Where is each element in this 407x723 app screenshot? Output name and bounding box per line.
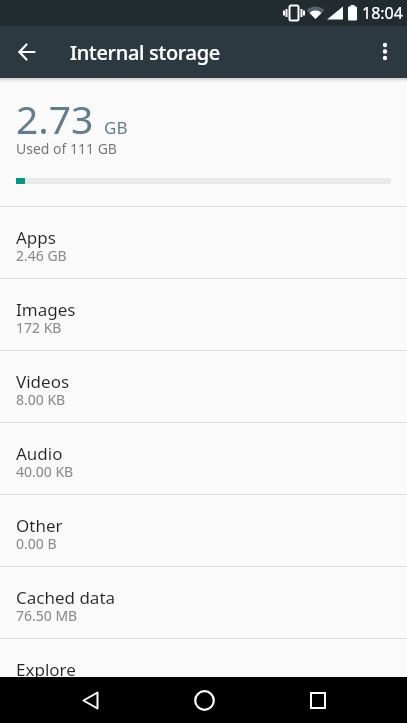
staticText: Used of 111 GB	[16, 139, 117, 158]
staticText: 18:04	[362, 2, 403, 24]
staticText: 2.73	[16, 92, 104, 145]
staticText: 8.00 KB	[16, 390, 66, 409]
button[interactable]	[363, 26, 407, 78]
staticText: Audio	[16, 442, 63, 465]
staticText: Videos	[16, 370, 70, 393]
staticText: Other	[16, 514, 63, 537]
button[interactable]	[169, 677, 239, 723]
button[interactable]: Apps	[0, 206, 407, 278]
button[interactable]	[283, 677, 353, 723]
button[interactable]: Audio	[0, 422, 407, 494]
button[interactable]	[55, 677, 125, 723]
staticText: Explore	[16, 658, 76, 677]
button[interactable]: Other	[0, 494, 407, 566]
staticText: Internal storage	[70, 39, 220, 66]
staticText: 2.46 GB	[16, 246, 67, 265]
button[interactable]: Explore	[0, 638, 407, 677]
staticText: GB	[104, 116, 128, 139]
button[interactable]	[0, 26, 54, 78]
staticText: 76.50 MB	[16, 606, 78, 625]
button[interactable]: Cached data	[0, 566, 407, 638]
staticText: Cached data	[16, 586, 116, 609]
button[interactable]: Images	[0, 278, 407, 350]
staticText: 0.00 B	[16, 534, 57, 553]
button[interactable]: Videos	[0, 350, 407, 422]
staticText: Images	[16, 298, 76, 321]
staticText: Apps	[16, 226, 56, 249]
staticText: 172 KB	[16, 318, 62, 337]
staticText: 40.00 KB	[16, 462, 74, 481]
